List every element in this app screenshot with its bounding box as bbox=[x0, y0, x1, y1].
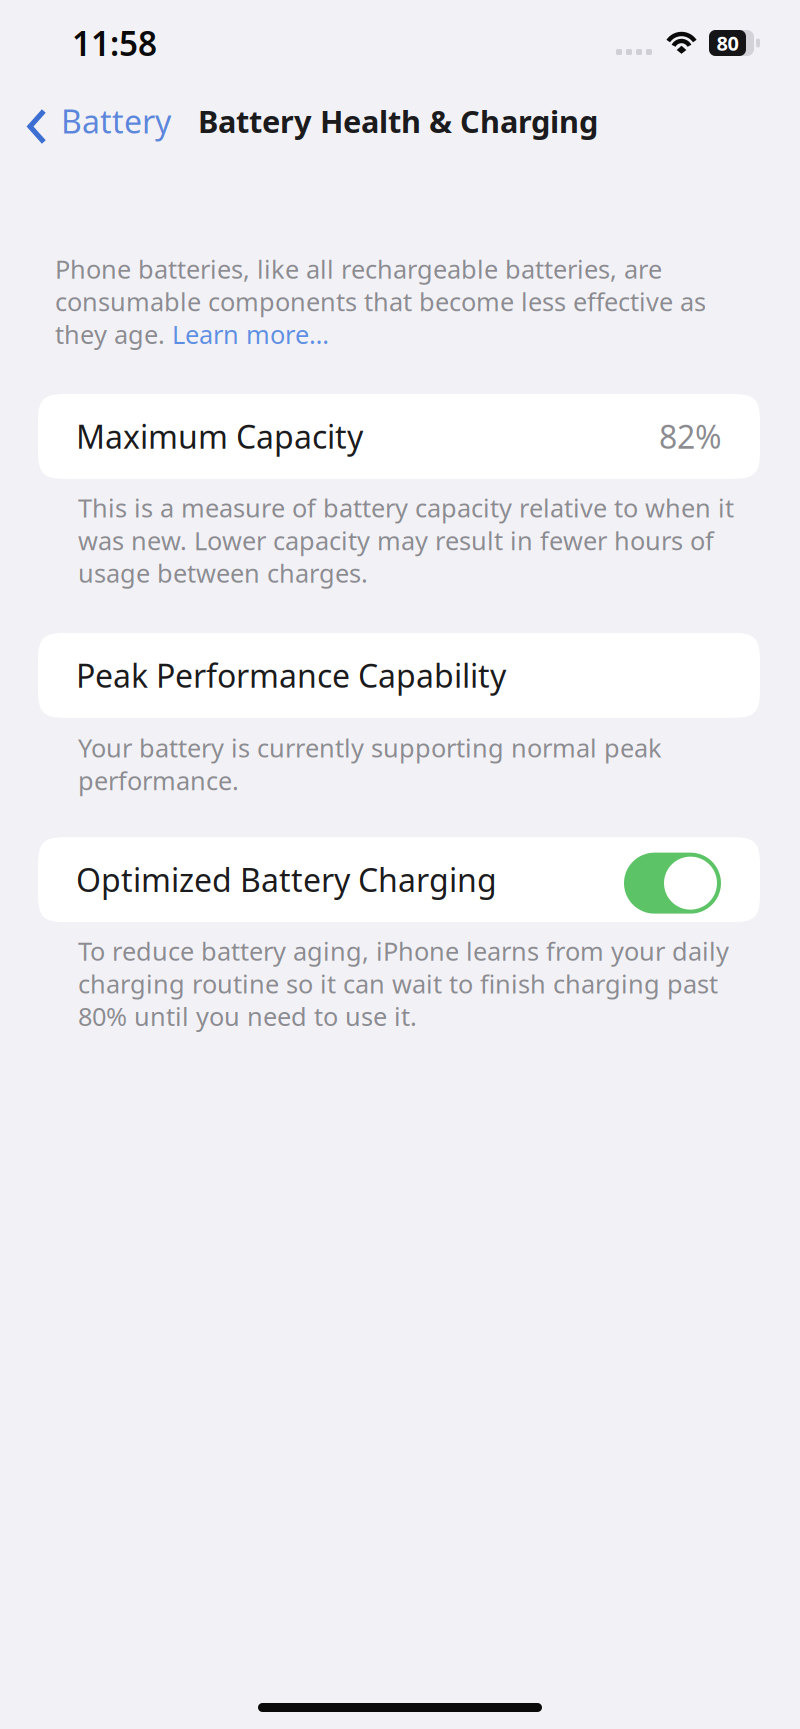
button[interactable]: Back to Battery bbox=[0, 89, 185, 153]
staticText: they age. bbox=[55, 317, 172, 351]
button[interactable]: Learn more… bbox=[172, 317, 329, 351]
staticText: 82% bbox=[659, 415, 722, 458]
staticText: Phone batteries, like all rechargeable b… bbox=[55, 252, 662, 286]
button[interactable]: Maximum Capacity bbox=[0, 394, 760, 479]
button[interactable]: Peak Performance Capability bbox=[0, 633, 760, 718]
staticText: This is a measure of battery capacity re… bbox=[78, 491, 734, 590]
staticText: Optimized Battery Charging bbox=[76, 858, 497, 901]
staticText: To reduce battery aging, iPhone learns f… bbox=[78, 934, 729, 1033]
staticText: consumable components that become less e… bbox=[55, 285, 706, 318]
button[interactable]: Optimized Battery Charging, on bbox=[624, 846, 721, 914]
staticText: Learn more… bbox=[172, 317, 329, 351]
staticText: Maximum Capacity bbox=[76, 415, 363, 458]
staticText: 80 bbox=[716, 30, 738, 56]
staticText: Battery Health & Charging bbox=[198, 101, 598, 141]
staticText: Battery bbox=[61, 100, 171, 142]
staticText: Peak Performance Capability bbox=[76, 654, 506, 697]
staticText: 11:58 bbox=[72, 21, 157, 65]
staticText: Your battery is currently supporting nor… bbox=[78, 731, 662, 797]
